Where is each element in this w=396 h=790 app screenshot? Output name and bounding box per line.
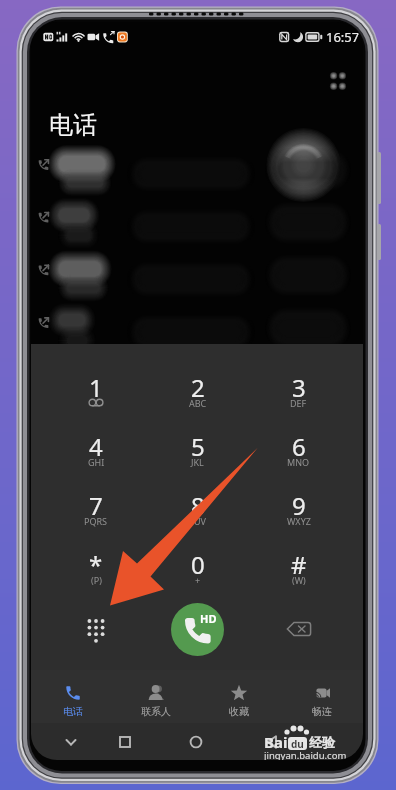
button[interactable]: 6 [248,416,349,475]
staticText: 7 [89,489,103,522]
button[interactable]: 0 [147,534,248,593]
button[interactable]: 畅连 [280,670,363,723]
button[interactable]: Home [178,723,214,760]
button[interactable]: * [45,534,147,593]
staticText: 8 [191,489,205,522]
staticText: DEF [290,397,307,409]
staticText: (W) [292,574,306,586]
staticText: 2 [191,371,205,404]
staticText: WXYZ [287,515,311,527]
staticText: 9 [292,489,306,522]
staticText: ABC [189,397,207,409]
button[interactable]: 8 [147,475,248,534]
staticText: PQRS [84,515,108,527]
staticText: GHI [88,456,105,468]
staticText: 1 [89,371,103,404]
button[interactable]: Hide keyboard [53,723,89,760]
staticText: (P) [91,574,102,586]
staticText: 16:57 [326,28,360,46]
button[interactable]: 3 [248,357,349,416]
staticText: JKL [191,456,204,468]
button[interactable]: Back [254,723,290,760]
staticText: 经验 [309,734,335,750]
staticText: 5 [191,430,205,463]
staticText: 6 [292,430,306,463]
button[interactable]: 2 [147,357,248,416]
staticText: TUV [189,515,206,527]
button[interactable]: 7 [45,475,147,534]
button[interactable]: 5 [147,416,248,475]
button[interactable]: 1 [45,357,147,416]
button[interactable]: 收藏 [197,670,280,723]
staticText: 电话 [49,110,97,140]
staticText: 4 [89,430,103,463]
button[interactable]: 4 [45,416,147,475]
staticText: + [195,574,201,586]
button[interactable]: 电话 [31,670,114,723]
button[interactable]: # [248,534,349,593]
staticText: 联系人 [141,705,171,718]
staticText: 3 [292,371,306,404]
staticText: HD [200,611,217,626]
staticText: 畅连 [312,705,332,718]
staticText: # [291,548,307,581]
button[interactable]: Call [171,603,224,656]
button[interactable]: 9 [248,475,349,534]
staticText: * [89,548,103,581]
staticText: 收藏 [229,705,249,718]
button[interactable]: Recents [107,723,143,760]
staticText: MNO [287,456,310,468]
staticText: du [291,737,304,750]
button[interactable]: Show keypad [45,593,147,665]
button[interactable]: Backspace [248,593,349,665]
button[interactable]: More options [323,66,353,96]
staticText: jingyan.baidu.com [264,749,347,760]
staticText: Bai [264,732,288,752]
staticText: 0 [191,548,205,581]
staticText: 电话 [63,705,83,718]
button[interactable]: 联系人 [114,670,197,723]
